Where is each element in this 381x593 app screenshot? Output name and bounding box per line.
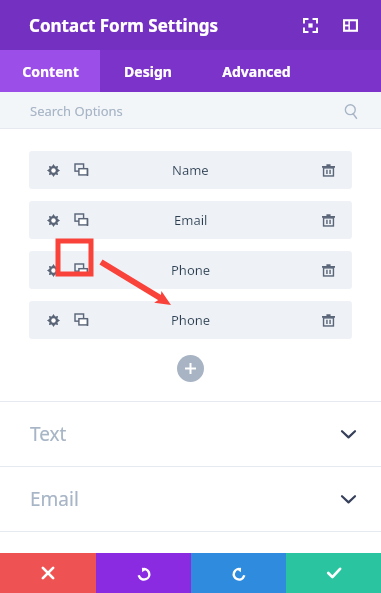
staticText: Design: [124, 62, 172, 81]
button[interactable]: Delete: [316, 208, 340, 232]
button[interactable]: Search: [339, 99, 363, 123]
button[interactable]: Advanced: [196, 50, 316, 92]
button[interactable]: Undo: [96, 553, 191, 593]
staticText: Contact Form Settings: [29, 14, 218, 37]
button[interactable]: Settings: [29, 251, 352, 289]
button[interactable]: Add: [177, 355, 204, 382]
button[interactable]: Settings: [41, 258, 65, 282]
button[interactable]: Settings: [29, 151, 352, 189]
staticText: Advanced: [222, 62, 291, 81]
button[interactable]: Duplicate: [69, 308, 93, 332]
staticText: Email: [174, 211, 208, 229]
button[interactable]: Save: [286, 553, 381, 593]
button[interactable]: Design: [100, 50, 196, 92]
button[interactable]: Delete: [316, 258, 340, 282]
button[interactable]: Delete: [316, 308, 340, 332]
staticText: Email: [30, 486, 79, 512]
button[interactable]: Fullscreen: [293, 8, 327, 42]
button[interactable]: Redo: [191, 553, 286, 593]
button[interactable]: Duplicate: [69, 208, 93, 232]
button[interactable]: Content: [0, 50, 100, 92]
button[interactable]: Settings: [41, 308, 65, 332]
staticText: Phone: [171, 311, 211, 329]
button[interactable]: Email: [0, 467, 381, 531]
staticText: Search Options: [30, 102, 123, 120]
button[interactable]: Settings: [29, 201, 352, 239]
button[interactable]: Layout: [333, 8, 367, 42]
button[interactable]: Settings: [29, 301, 352, 339]
staticText: Text: [30, 421, 67, 447]
staticText: Content: [22, 62, 79, 81]
staticText: Phone: [171, 261, 211, 279]
button[interactable]: Cancel: [0, 553, 96, 593]
button[interactable]: Settings: [41, 208, 65, 232]
button[interactable]: Settings: [41, 158, 65, 182]
button[interactable]: Duplicate: [69, 158, 93, 182]
button[interactable]: Text: [0, 402, 381, 466]
button[interactable]: Delete: [316, 158, 340, 182]
staticText: Name: [172, 161, 209, 179]
button[interactable]: Duplicate: [69, 258, 93, 282]
